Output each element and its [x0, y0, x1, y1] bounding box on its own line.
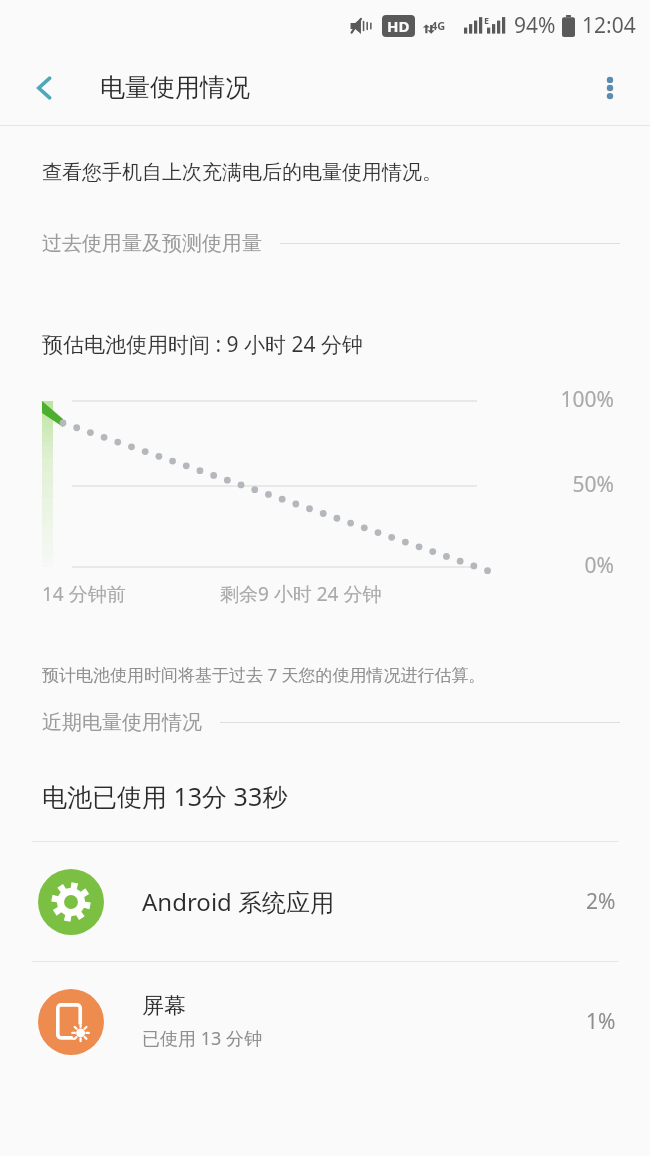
staticText: 50%: [572, 470, 614, 499]
staticText: 已使用 13 分钟: [142, 1026, 262, 1051]
staticText: 2%: [586, 887, 616, 916]
staticText: 过去使用量及预测使用量: [42, 231, 262, 256]
staticText: 电池已使用 13分 33秒: [42, 779, 288, 813]
button[interactable]: Back: [16, 59, 74, 117]
staticText: 查看您手机自上次充满电后的电量使用情况。: [42, 160, 442, 185]
staticText: E: [484, 14, 490, 26]
staticText: 剩余9 小时 24 分钟: [220, 581, 382, 607]
staticText: HD: [387, 16, 410, 36]
staticText: 1%: [586, 1007, 616, 1036]
staticText: 14 分钟前: [42, 581, 126, 607]
staticText: 屏幕: [142, 992, 186, 1020]
staticText: 100%: [560, 385, 614, 414]
staticText: Android 系统应用: [142, 885, 335, 918]
staticText: 近期电量使用情况: [42, 710, 202, 735]
staticText: 预估电池使用时间 : 9 小时 24 分钟: [42, 330, 363, 359]
staticText: 预计电池使用时间将基于过去 7 天您的使用情况进行估算。: [42, 663, 486, 686]
button[interactable]: Android 系统应用: [0, 842, 650, 961]
staticText: 94%: [514, 11, 556, 40]
staticText: 4G: [431, 18, 446, 33]
staticText: 12:04: [582, 11, 636, 40]
button[interactable]: More options: [582, 60, 638, 116]
button[interactable]: 屏幕: [0, 962, 650, 1081]
staticText: 电量使用情况: [100, 72, 250, 103]
staticText: 0%: [584, 551, 614, 580]
